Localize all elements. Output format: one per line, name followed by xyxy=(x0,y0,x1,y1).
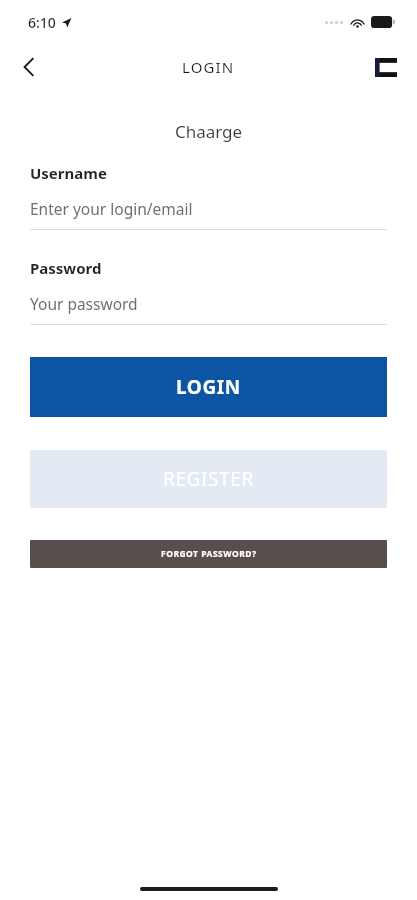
staticText: Your password xyxy=(30,293,138,314)
button[interactable]: FORGOT PASSWORD? xyxy=(30,540,387,568)
button[interactable]: REGISTER xyxy=(30,450,387,508)
staticText: 6:10 xyxy=(28,13,56,32)
staticText: FORGOT PASSWORD? xyxy=(161,548,257,560)
staticText: LOGIN xyxy=(182,57,235,77)
button[interactable]: Enter your login/email xyxy=(30,198,387,230)
staticText: REGISTER xyxy=(163,466,254,492)
staticText: Chaarge xyxy=(0,120,417,143)
staticText: LOGIN xyxy=(176,374,241,400)
button[interactable]: Back xyxy=(10,49,46,85)
staticText: Enter your login/email xyxy=(30,198,193,219)
button[interactable]: Chaarge logo xyxy=(369,50,403,84)
button[interactable]: LOGIN xyxy=(30,357,387,417)
staticText: Username xyxy=(30,163,107,183)
staticText: Password xyxy=(30,258,102,278)
button[interactable]: Your password xyxy=(30,293,387,325)
